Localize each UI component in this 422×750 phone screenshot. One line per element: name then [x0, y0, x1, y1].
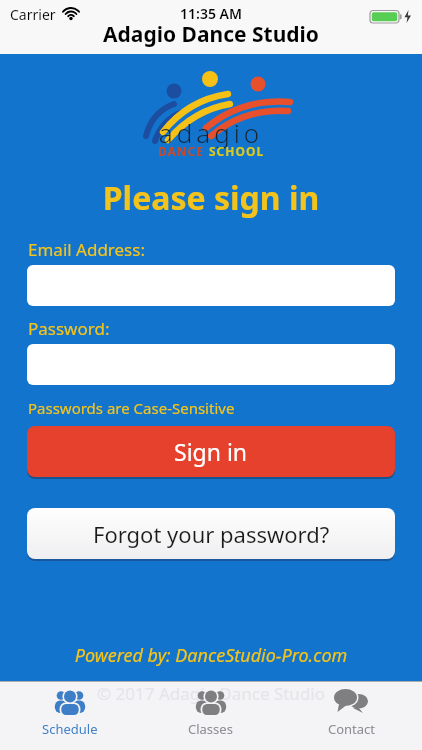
button[interactable]: Schedule [0, 681, 140, 750]
staticText: Passwords are Case-Sensitive [28, 398, 235, 418]
button[interactable] [27, 265, 395, 306]
staticText: Password: [28, 317, 110, 340]
button[interactable]: Contact [281, 681, 422, 750]
staticText: Schedule [42, 720, 98, 738]
staticText: Classes [188, 720, 233, 738]
button[interactable]: Sign in [27, 426, 395, 477]
staticText: Contact [328, 720, 376, 738]
staticText: Sign in [174, 436, 248, 467]
staticText: Carrier [10, 5, 56, 24]
button[interactable] [27, 344, 395, 385]
staticText: SCHOOL [209, 143, 265, 159]
button[interactable]: Classes [140, 681, 281, 750]
staticText: 11:35 AM [0, 4, 422, 23]
staticText: Forgot your password? [93, 519, 330, 549]
staticText: Email Address: [28, 238, 145, 261]
staticText: © 2017 Adagio Dance Studio [0, 682, 422, 705]
button[interactable]: Forgot your password? [27, 508, 395, 559]
staticText: Please sign in [0, 176, 422, 220]
staticText: DANCE [158, 143, 209, 159]
staticText: Adagio Dance Studio [0, 20, 422, 49]
staticText: Powered by: DanceStudio-Pro.com [0, 643, 422, 668]
staticText: adagio [0, 115, 422, 150]
